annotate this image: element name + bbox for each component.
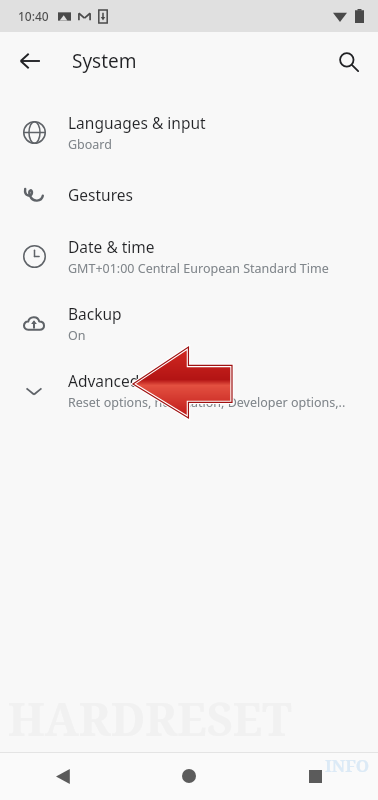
button[interactable]: Backup	[0, 290, 378, 357]
button[interactable]: Home	[126, 752, 252, 800]
staticText: On	[68, 327, 86, 344]
staticText: Languages & input	[68, 112, 206, 133]
staticText: INFO	[325, 754, 370, 777]
button[interactable]: Recent apps	[252, 752, 378, 800]
staticText: Reset options, notification, Developer o…	[68, 394, 346, 411]
button[interactable]: Date & time	[0, 223, 378, 290]
staticText: Gboard	[68, 136, 112, 153]
button[interactable]: Back	[8, 39, 52, 83]
staticText: Gestures	[68, 184, 133, 205]
staticText: 10:40	[18, 8, 49, 24]
staticText: Advanced	[68, 370, 140, 391]
button[interactable]: Back	[0, 752, 126, 800]
button[interactable]: Gestures	[0, 166, 378, 223]
staticText: GMT+01:00 Central European Standard Time	[68, 260, 329, 277]
staticText: Date & time	[68, 236, 155, 257]
staticText: Backup	[68, 303, 122, 324]
button[interactable]: Languages & input	[0, 99, 378, 166]
staticText: System	[72, 48, 137, 74]
button[interactable]: Advanced	[0, 357, 378, 424]
button[interactable]: Search	[326, 39, 370, 83]
